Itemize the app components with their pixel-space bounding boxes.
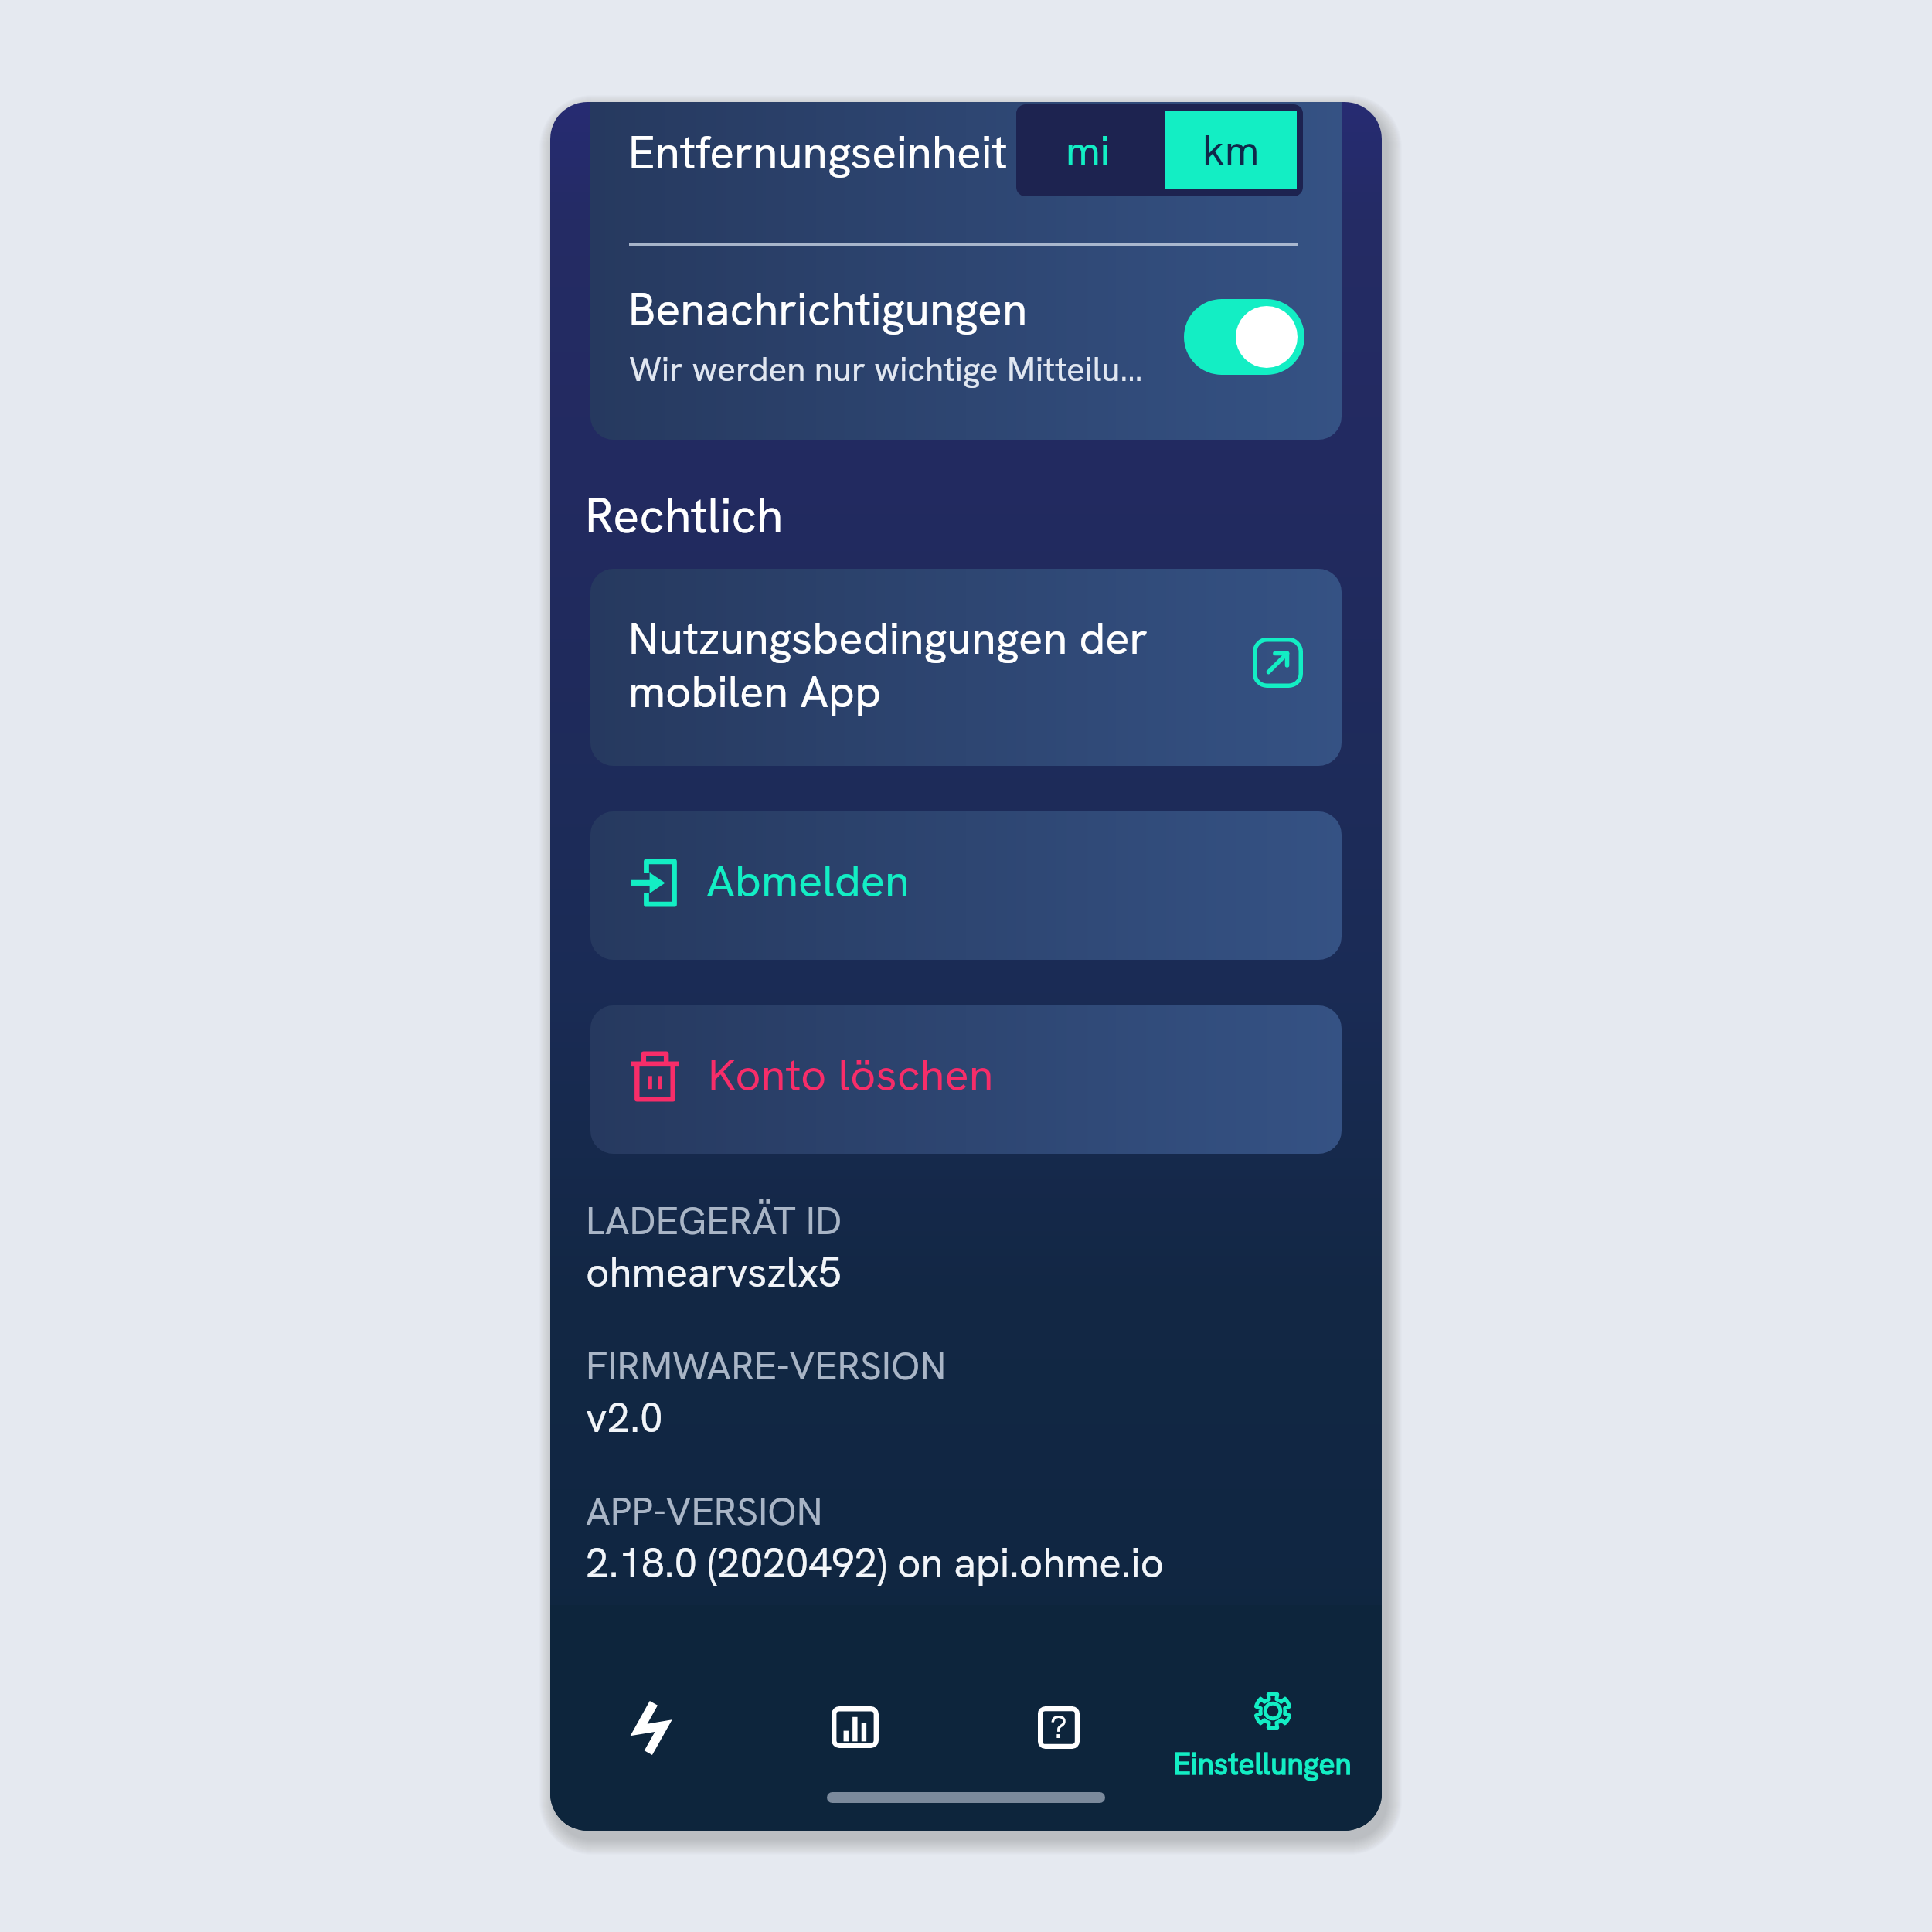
staticText: Nutzungsbedingungen der mobilen App [628, 609, 1148, 721]
staticText: LADEGERÄT ID [586, 1196, 842, 1246]
staticText: Einstellungen [1173, 1744, 1352, 1784]
button[interactable]: Abmelden [590, 811, 1342, 960]
staticText: Wir werden nur wichtige Mitteilu… [629, 347, 1143, 391]
staticText: v2.0 [586, 1391, 663, 1444]
button[interactable]: Link öffnen [1248, 633, 1307, 692]
button[interactable]: Benachrichtigungen umschalten [1184, 299, 1304, 375]
staticText: km [1202, 123, 1260, 177]
staticText: mi [1066, 124, 1110, 178]
button[interactable]: Statistik [758, 1605, 966, 1831]
staticText: 2.18.0 (2020492) on api.ohme.io [586, 1536, 1165, 1590]
button[interactable]: Laden [550, 1605, 758, 1831]
staticText: Abmelden [706, 852, 910, 910]
staticText: Rechtlich [585, 484, 784, 547]
staticText: Konto löschen [708, 1046, 994, 1104]
button[interactable]: Nutzungsbedingungen der mobilen App [590, 569, 1342, 766]
staticText: APP-VERSION [586, 1486, 823, 1536]
button[interactable]: Konto löschen [590, 1005, 1342, 1154]
button[interactable]: mi [1016, 104, 1159, 196]
staticText: Entfernungseinheit [628, 123, 1008, 182]
staticText: FIRMWARE-VERSION [586, 1341, 947, 1391]
staticText: Benachrichtigungen [628, 280, 1028, 339]
button[interactable]: Einstellungen [1174, 1605, 1382, 1831]
staticText: ohmearvszlx5 [586, 1246, 842, 1299]
button[interactable]: km [1165, 111, 1297, 189]
staticText: ? [1050, 1706, 1067, 1748]
button[interactable]: Hilfe [966, 1605, 1174, 1831]
